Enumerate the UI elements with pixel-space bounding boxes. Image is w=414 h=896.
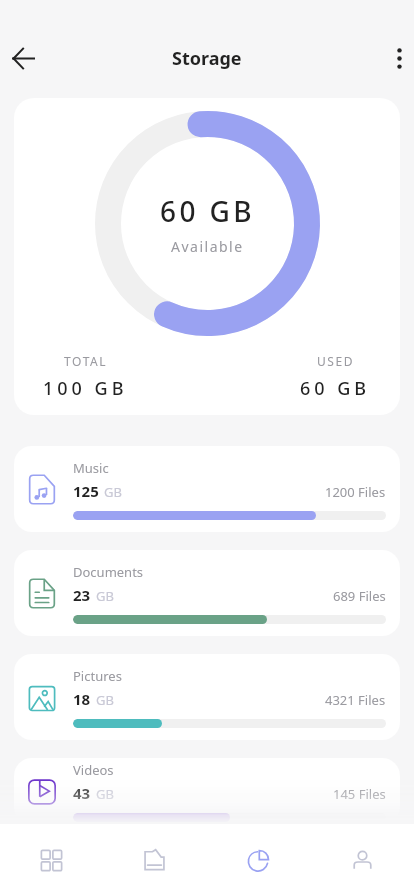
staticText: 1200 Files (325, 483, 386, 501)
staticText: GB (96, 785, 114, 803)
staticText: 689 Files (333, 587, 386, 605)
staticText: 100 GB (43, 376, 128, 401)
button[interactable]: Profile (310, 824, 414, 896)
staticText: GB (96, 691, 114, 709)
staticText: GB (104, 483, 122, 501)
staticText: TOTAL (64, 353, 108, 369)
staticText: Available (171, 237, 244, 256)
button[interactable]: Videos (14, 758, 400, 824)
button[interactable]: Stats (206, 824, 310, 896)
staticText: 43 (73, 783, 91, 803)
staticText: GB (96, 587, 114, 605)
staticText: Storage (172, 46, 242, 71)
button[interactable]: More options (384, 35, 414, 81)
staticText: 125 (73, 481, 99, 501)
button[interactable]: Documents (14, 550, 400, 636)
button[interactable]: Pictures (14, 654, 400, 740)
button[interactable]: Files (103, 824, 206, 896)
staticText: 60 GB (300, 376, 371, 401)
staticText: 4321 Files (325, 691, 386, 709)
staticText: Pictures (73, 667, 122, 685)
staticText: 60 GB (160, 192, 255, 230)
button[interactable]: Back (0, 35, 46, 81)
staticText: Videos (73, 761, 114, 779)
staticText: Documents (73, 563, 144, 581)
button[interactable]: Music (14, 446, 400, 532)
staticText: 23 (73, 585, 91, 605)
button[interactable]: Dashboard (0, 824, 103, 896)
staticText: 18 (73, 689, 91, 709)
staticText: 145 Files (333, 785, 386, 803)
staticText: USED (317, 353, 355, 369)
staticText: Music (73, 459, 109, 477)
